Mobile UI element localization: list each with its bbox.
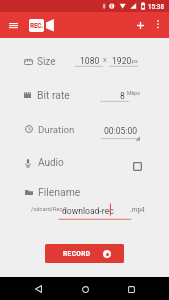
button[interactable]: Filename field [0,200,169,221]
staticText: /sdcard/Rec/ [31,206,65,213]
staticText: download-rec [62,206,114,216]
button[interactable]: Screen size [0,49,169,75]
staticText: px [132,58,138,65]
button[interactable]: Audio [0,150,169,176]
button[interactable]: Add [131,16,149,34]
staticText: Bit rate [37,89,70,101]
staticText: Mbps [127,90,140,96]
button[interactable]: Record audio checkbox [128,157,146,175]
button[interactable]: Video height [109,54,138,68]
staticText: 1080 [80,56,100,66]
button[interactable]: Video width [75,54,103,68]
button[interactable]: RECORD [45,244,124,263]
staticText: x [103,56,107,64]
staticText: 1920 [112,56,132,66]
staticText: Filename [38,186,81,198]
button[interactable]: Duration spinner [101,124,140,141]
button[interactable]: Home [77,281,93,297]
button[interactable]: Back [30,281,46,297]
staticText: 00:05:00 [104,126,138,136]
staticText: Size [37,56,56,68]
button[interactable]: Bit rate value [100,89,129,103]
button[interactable]: Filename [0,179,169,205]
button[interactable]: Duration [0,116,169,142]
button[interactable]: Bit rate [0,82,169,108]
staticText: 15:38 [148,3,164,10]
button[interactable]: More options [150,16,166,32]
staticText: RECORD [63,250,91,258]
staticText: REC. [30,22,44,30]
staticText: 8 [120,91,125,101]
button[interactable]: Open navigation menu [4,16,22,34]
staticText: Duration [38,124,75,135]
button[interactable]: REC logo [29,19,44,32]
staticText: Audio [38,157,64,169]
staticText: .mp4 [130,206,145,214]
button[interactable]: Recent apps [123,281,139,297]
